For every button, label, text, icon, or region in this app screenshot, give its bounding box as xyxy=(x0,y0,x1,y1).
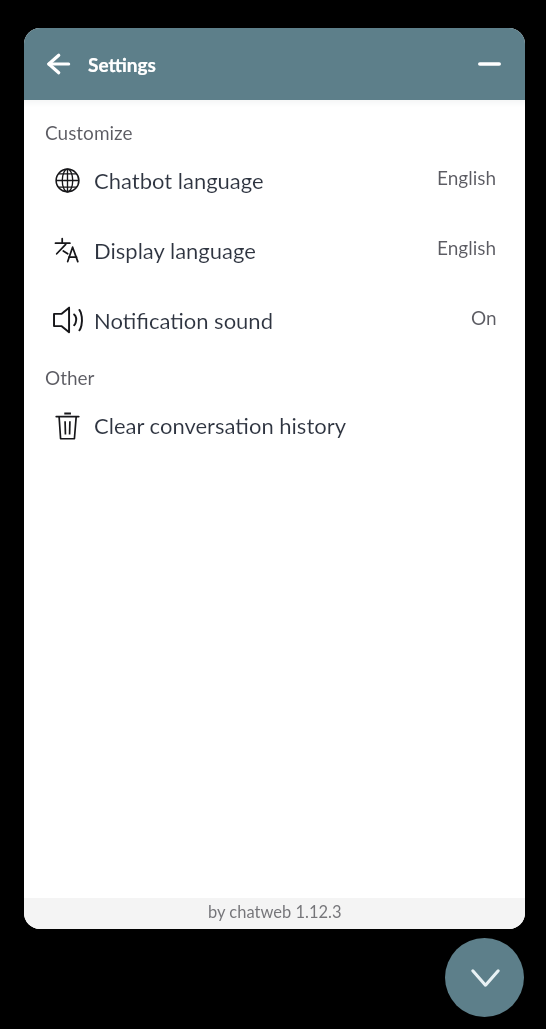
staticText: Chatbot language xyxy=(94,167,264,193)
staticText: Notification sound xyxy=(94,307,273,333)
button[interactable]: Minimize chat xyxy=(445,938,524,1017)
staticText: Display language xyxy=(94,237,256,263)
button[interactable]: Minimize xyxy=(467,42,511,86)
staticText: English xyxy=(437,166,497,189)
button[interactable]: Back xyxy=(36,42,80,86)
staticText: by chatweb 1.12.3 xyxy=(208,902,342,922)
staticText: Clear conversation history xyxy=(94,412,347,438)
staticText: English xyxy=(437,236,497,259)
staticText: Customize xyxy=(45,121,133,144)
staticText: Other xyxy=(45,366,95,389)
staticText: Settings xyxy=(88,53,156,76)
staticText: On xyxy=(471,306,497,329)
button[interactable]: Notification sound xyxy=(24,285,525,355)
button[interactable]: Display language xyxy=(24,215,525,285)
button[interactable]: Chatbot language xyxy=(24,145,525,215)
button[interactable]: Clear conversation history xyxy=(24,390,525,460)
